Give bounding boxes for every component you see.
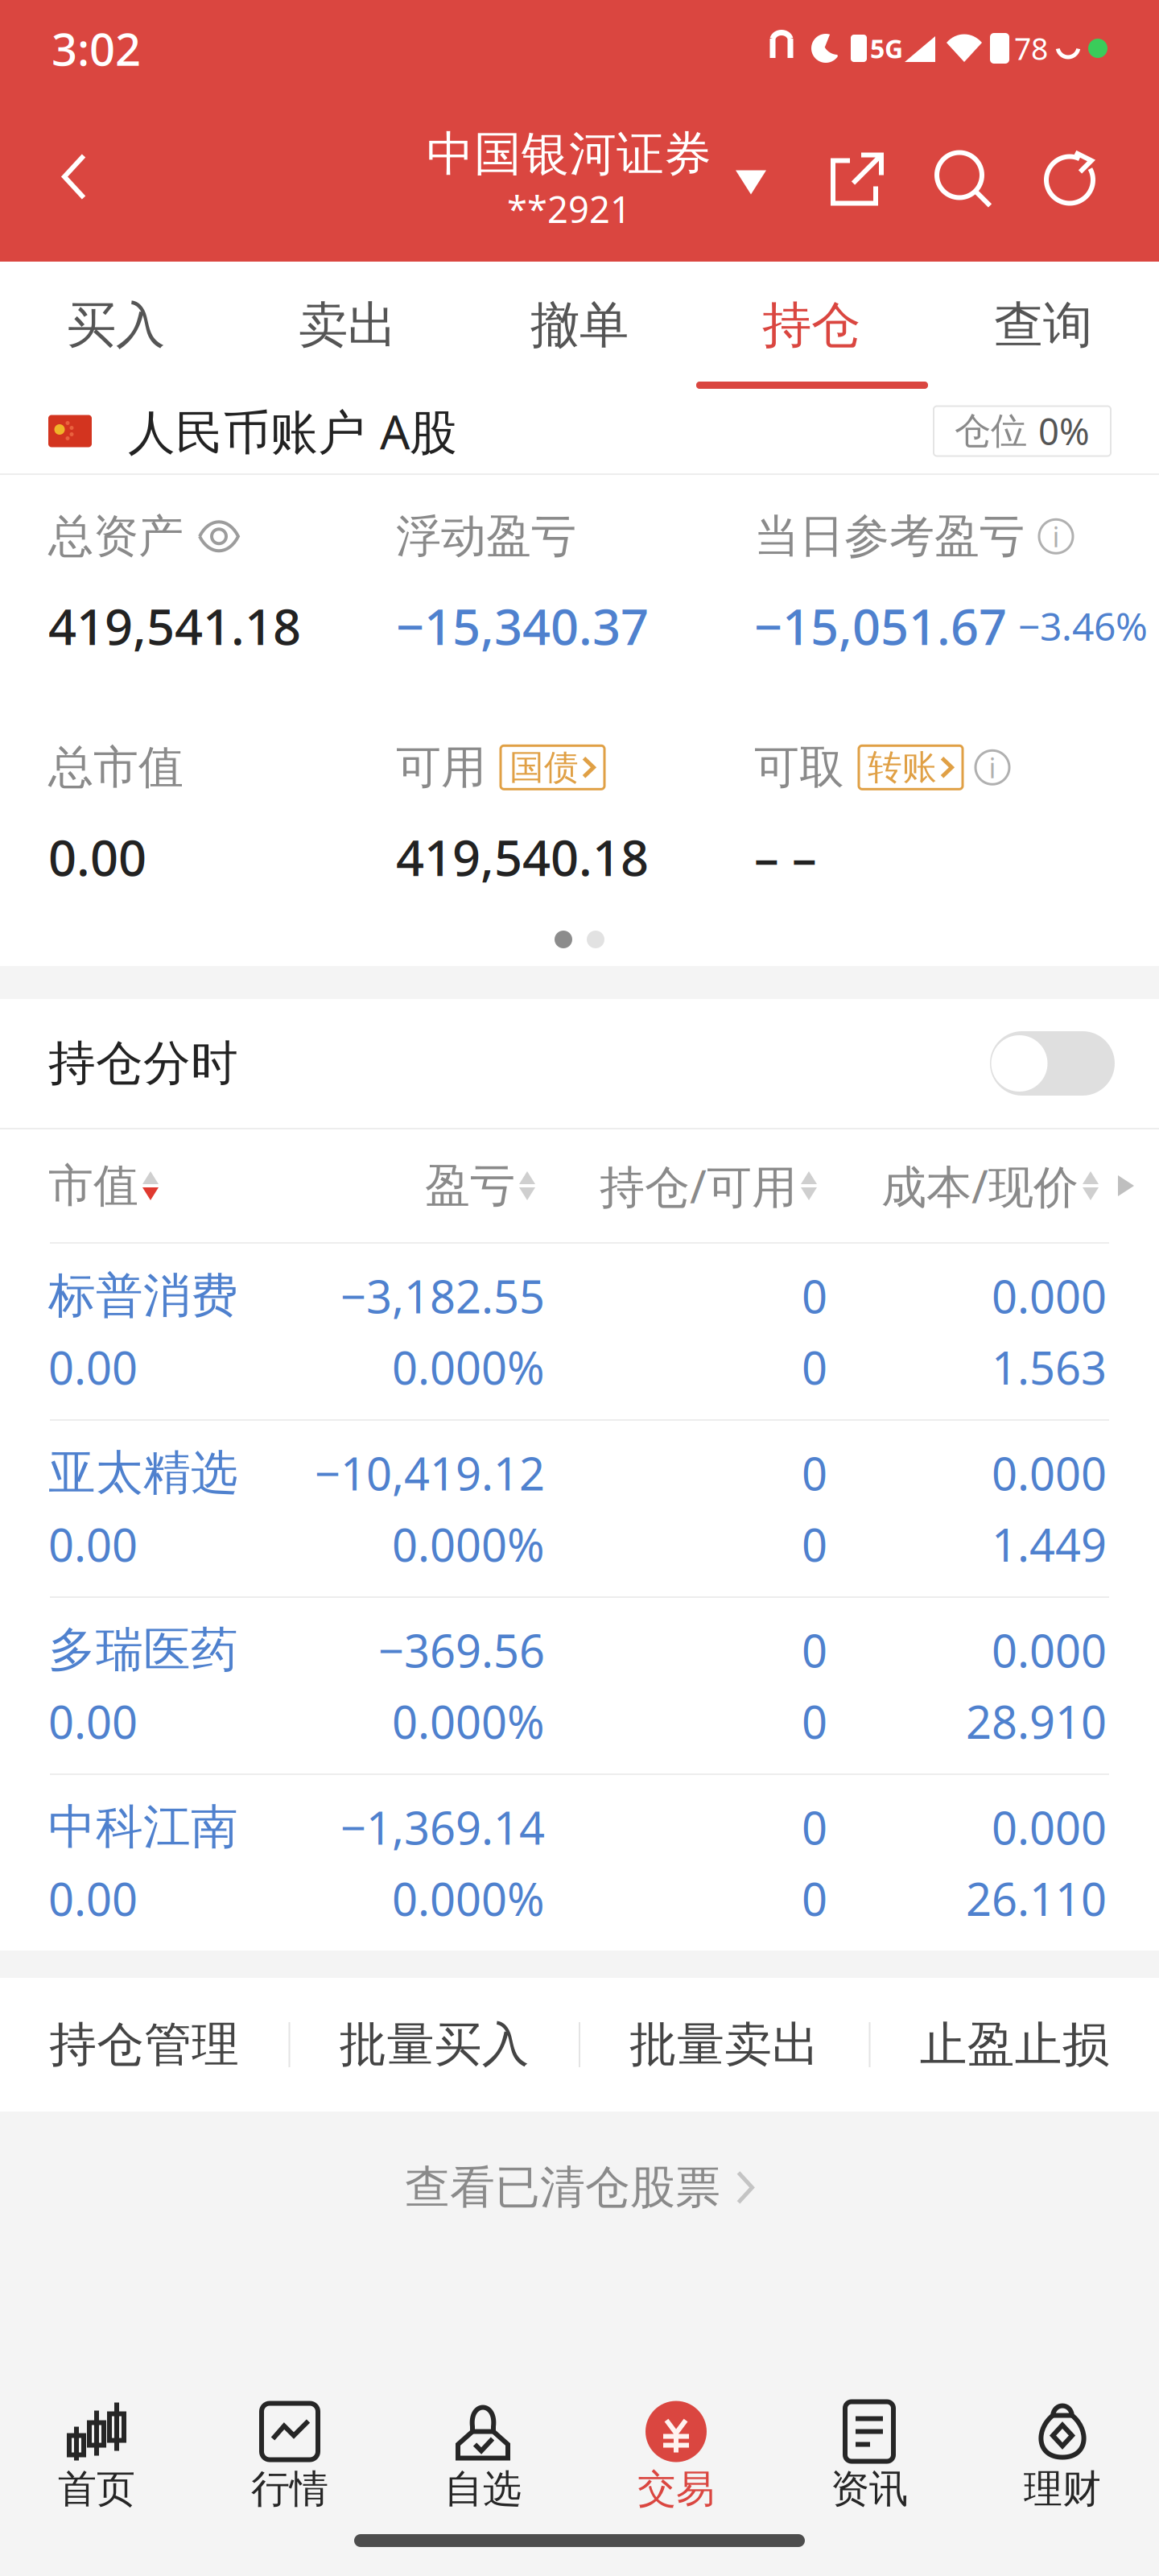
staticText: 1.563	[992, 1337, 1107, 1397]
button[interactable]: 批量买入	[290, 1978, 579, 2112]
button[interactable]: 止盈止损	[870, 1978, 1159, 2112]
staticText: 仓位	[955, 409, 1038, 454]
staticText: 0.000%	[392, 1691, 545, 1751]
staticText: 持仓管理	[49, 2016, 239, 2074]
staticText: 持仓	[762, 295, 860, 355]
button[interactable]: 持仓	[695, 262, 927, 389]
staticText: 0.000%	[392, 1337, 545, 1397]
staticText: 0.000%	[392, 1514, 545, 1574]
staticText: 标普消费	[48, 1267, 238, 1325]
staticText: 0	[802, 1691, 827, 1751]
button[interactable]: 市值	[48, 1158, 217, 1213]
staticText: 0	[802, 1620, 827, 1680]
button[interactable]: 标普消费	[0, 1244, 1159, 1419]
staticText: 0.000%	[392, 1868, 545, 1928]
staticText: 国债	[509, 746, 579, 788]
staticText: 盈亏	[425, 1158, 515, 1213]
button[interactable]: 查看已清仓股票	[405, 2160, 754, 2215]
button[interactable]: Share	[827, 149, 887, 209]
staticText: 资讯	[831, 2465, 908, 2513]
button[interactable]: 中科江南	[0, 1775, 1159, 1951]
button[interactable]: 批量卖出	[580, 1978, 869, 2112]
staticText: 0.000	[992, 1266, 1107, 1326]
staticText: 止盈止损	[920, 2016, 1110, 2074]
button[interactable]: 理财	[966, 2397, 1159, 2515]
staticText: 理财	[1024, 2465, 1101, 2513]
staticText: 3:02	[52, 18, 141, 78]
button[interactable]: 查询	[927, 262, 1159, 389]
staticText: 查看已清仓股票	[405, 2160, 720, 2215]
button[interactable]: 持仓管理	[0, 1978, 289, 2112]
button[interactable]: 盈亏	[425, 1158, 546, 1213]
button[interactable]: 自选	[386, 2397, 579, 2515]
staticText: −15,340.37	[396, 593, 649, 659]
staticText: 批量卖出	[630, 2016, 820, 2074]
staticText: 0.000	[992, 1620, 1107, 1680]
staticText: 78	[1014, 28, 1048, 68]
staticText: −1,369.14	[340, 1797, 545, 1857]
button[interactable]: 撤单	[464, 262, 695, 389]
staticText: 0.00	[48, 824, 146, 890]
button[interactable]: 持仓/可用	[600, 1156, 825, 1216]
button[interactable]: Refresh	[1040, 149, 1099, 209]
button[interactable]: Search	[934, 149, 993, 209]
staticText: 持仓分时	[48, 1034, 238, 1092]
button[interactable]: 首页	[0, 2397, 193, 2515]
staticText: **2921	[507, 185, 631, 233]
button[interactable]: 中国银河证券	[427, 125, 766, 233]
staticText: 0	[802, 1337, 827, 1397]
staticText: 查询	[994, 295, 1092, 355]
staticText: 0	[802, 1443, 827, 1503]
button[interactable]: 成本/现价	[881, 1156, 1107, 1216]
staticText: 中国银河证券	[427, 125, 711, 183]
staticText: 成本/现价	[881, 1156, 1079, 1216]
staticText: 持仓/可用	[600, 1156, 797, 1216]
staticText: −369.56	[378, 1620, 545, 1680]
staticText: 1.449	[992, 1514, 1107, 1574]
staticText: 中科江南	[48, 1798, 238, 1856]
staticText: 0	[802, 1797, 827, 1857]
button[interactable]: 行情	[193, 2397, 386, 2515]
staticText: 可用	[396, 740, 486, 795]
staticText: 0%	[1038, 407, 1090, 455]
staticText: 0.00	[48, 1337, 138, 1397]
button[interactable]: 买入	[0, 262, 232, 389]
staticText: 亚太精选	[48, 1444, 238, 1502]
staticText: 浮动盈亏	[396, 509, 576, 564]
staticText: 转账	[868, 746, 937, 788]
staticText: 当日参考盈亏	[754, 509, 1025, 564]
staticText: 自选	[444, 2465, 522, 2513]
staticText: 0.00	[48, 1868, 138, 1928]
staticText: 5G	[870, 31, 903, 65]
button[interactable]: 亚太精选	[0, 1421, 1159, 1596]
staticText: 419,540.18	[396, 824, 649, 890]
staticText: 总资产	[48, 509, 184, 564]
staticText: – –	[754, 824, 817, 890]
button[interactable]: 多瑞医药	[0, 1598, 1159, 1773]
staticText: −3.46%	[1018, 600, 1148, 651]
staticText: 0	[802, 1514, 827, 1574]
staticText: 交易	[637, 2465, 715, 2513]
staticText: 批量买入	[339, 2016, 529, 2074]
staticText: 419,541.18	[48, 593, 301, 659]
staticText: i	[989, 749, 996, 786]
staticText: 行情	[251, 2465, 328, 2513]
staticText: 0.000	[992, 1443, 1107, 1503]
button[interactable]: 持仓分时	[990, 1031, 1115, 1096]
staticText: −3,182.55	[340, 1266, 545, 1326]
button[interactable]: 卖出	[232, 262, 464, 389]
button[interactable]: 交易	[579, 2397, 773, 2515]
staticText: 市值	[48, 1158, 138, 1213]
staticText: 0	[802, 1868, 827, 1928]
staticText: 26.110	[966, 1868, 1107, 1928]
staticText: −15,051.67	[754, 593, 1007, 659]
staticText: 0	[802, 1266, 827, 1326]
staticText: 0.00	[48, 1691, 138, 1751]
button[interactable]: 资讯	[773, 2397, 966, 2515]
button[interactable]: Back	[0, 128, 127, 230]
staticText: 可取	[754, 740, 844, 795]
staticText: 首页	[58, 2465, 135, 2513]
staticText: 卖出	[299, 295, 397, 355]
staticText: 28.910	[966, 1691, 1107, 1751]
staticText: 多瑞医药	[48, 1621, 238, 1679]
